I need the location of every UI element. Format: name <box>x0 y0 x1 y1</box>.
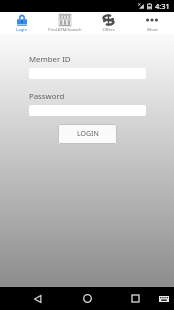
button[interactable]: Recents <box>125 288 146 309</box>
staticText: Find ATM/branch <box>48 27 82 33</box>
staticText: Password <box>29 91 65 102</box>
staticText: More <box>147 27 158 33</box>
staticText: Member ID <box>29 54 71 65</box>
button[interactable]: More <box>130 12 174 33</box>
button[interactable]: Find ATM/branch <box>43 12 86 33</box>
button[interactable]: Offers <box>86 12 130 33</box>
button[interactable]: LOGIN <box>58 124 117 144</box>
staticText: LOGIN <box>77 129 99 139</box>
staticText: Offers <box>102 27 115 33</box>
staticText: Login <box>16 27 27 33</box>
button[interactable]: Back <box>27 288 48 309</box>
button[interactable]: Home <box>77 288 98 309</box>
staticText: 4:31 <box>155 1 170 11</box>
button[interactable]: Switch keyboard <box>156 291 172 307</box>
button[interactable]: Login <box>0 12 43 33</box>
